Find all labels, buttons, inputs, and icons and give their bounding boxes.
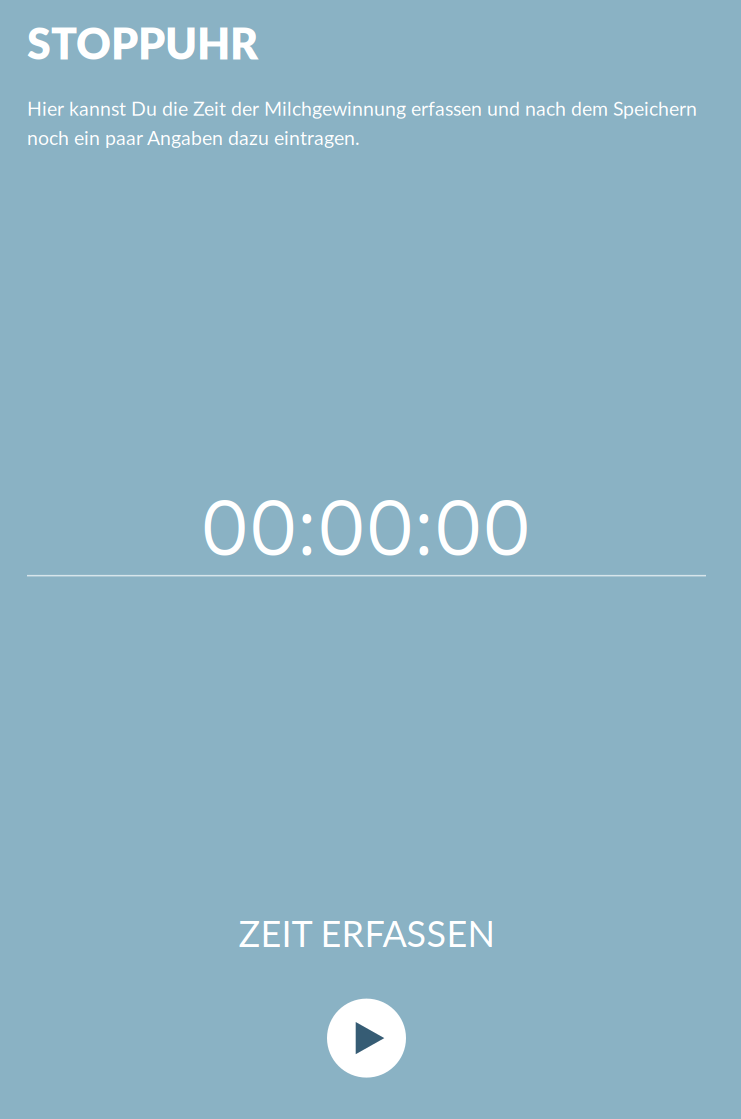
staticText: Hier kannst Du die Zeit der Milchgewinnu…: [27, 96, 697, 149]
staticText: 00:00:00: [201, 477, 530, 574]
staticText: STOPPUHR: [27, 17, 258, 68]
staticText: ZEIT ERFASSEN: [238, 911, 494, 955]
button[interactable]: ZEIT ERFASSEN: [27, 911, 706, 1078]
